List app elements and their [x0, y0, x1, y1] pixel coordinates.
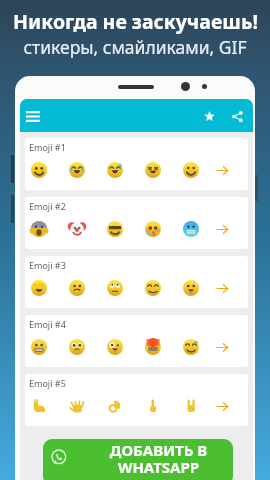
button[interactable]: Emoji #2: [25, 197, 248, 249]
button[interactable]: Emoji #3: [25, 256, 248, 308]
staticText: Emoji #2: [29, 200, 66, 212]
button[interactable]: Emoji #5: [25, 374, 248, 426]
staticText: стикеры, смайликами, GIF: [23, 35, 247, 59]
staticText: Emoji #5: [29, 377, 66, 389]
staticText: Emoji #1: [29, 141, 66, 153]
button[interactable]: ДОБАВИТЬ В WHATSAPP: [43, 439, 233, 480]
button[interactable]: Share: [226, 105, 248, 127]
button[interactable]: Menu: [21, 104, 45, 128]
staticText: ДОБАВИТЬ В WHATSAPP: [91, 440, 226, 478]
button[interactable]: Emoji #1: [25, 138, 248, 190]
button[interactable]: Emoji #4: [25, 315, 248, 367]
staticText: Emoji #4: [29, 318, 66, 330]
button[interactable]: Favorite: [198, 105, 220, 127]
staticText: Emoji #3: [29, 259, 66, 271]
staticText: Никогда не заскучаешь!: [13, 8, 258, 35]
